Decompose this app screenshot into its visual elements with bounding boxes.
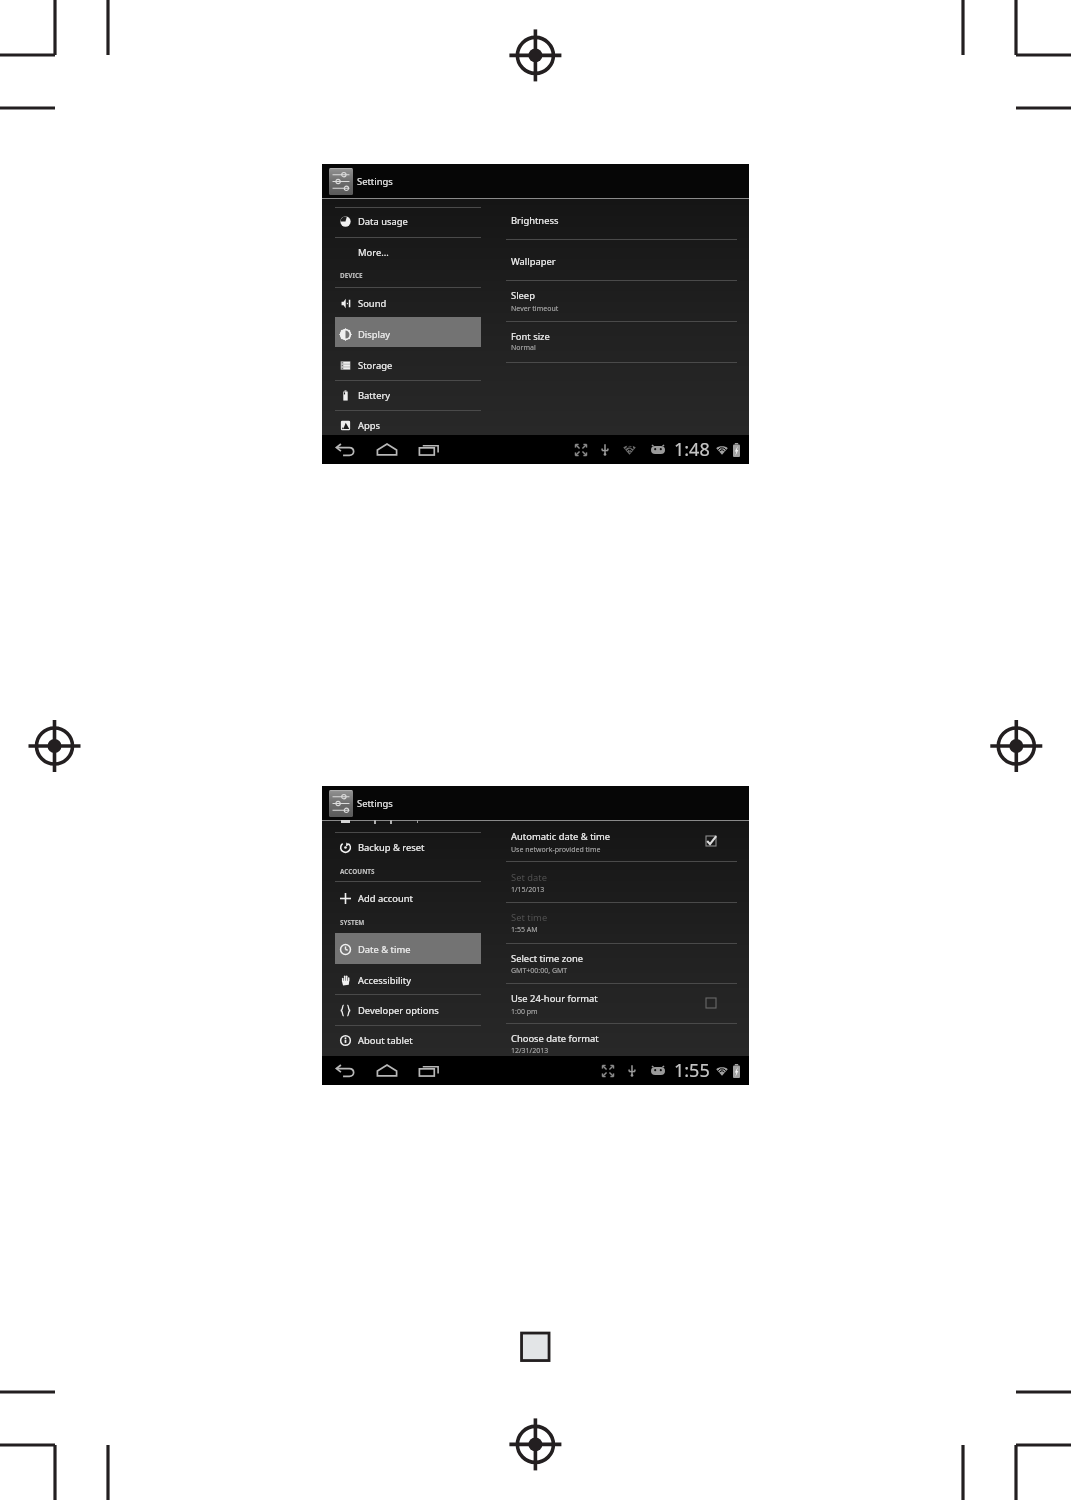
other: Wi-Fi signal <box>716 1066 728 1076</box>
button[interactable]: Set date <box>511 863 742 899</box>
staticText: Settings <box>357 797 393 810</box>
staticText: GMT+00:00, GMT <box>511 966 568 976</box>
button[interactable]: Font size <box>511 322 742 357</box>
button[interactable]: Brightness <box>511 206 742 234</box>
staticText: Automatic date & time <box>511 830 611 843</box>
other: System update <box>651 445 665 454</box>
staticText: ACCOUNTS <box>340 867 375 876</box>
staticText: Brightness <box>511 214 559 227</box>
staticText: SYSTEM <box>340 918 365 927</box>
other: Wi-Fi signal <box>716 445 728 455</box>
other: Full screen mode <box>602 1065 614 1077</box>
staticText: Wallpaper <box>511 255 556 268</box>
button[interactable]: Status bar, open quick settings <box>602 1058 740 1083</box>
other: Battery charging <box>733 443 740 457</box>
button[interactable]: More... <box>335 237 481 267</box>
button[interactable]: Accessibility <box>335 965 481 995</box>
staticText: Storage <box>358 359 393 372</box>
staticText: Display <box>358 328 391 341</box>
button[interactable]: Automatic date & time <box>511 822 742 859</box>
staticText: 1:55 AM <box>511 925 538 935</box>
staticText: Use network-provided time <box>511 845 601 855</box>
staticText: Add account <box>358 892 413 905</box>
other: Battery charging <box>733 1064 740 1078</box>
staticText: Sound <box>358 297 387 310</box>
staticText: Battery <box>358 389 391 402</box>
staticText: Data usage <box>358 215 408 228</box>
button[interactable]: Settings app icon <box>329 168 353 195</box>
staticText: 1:55 <box>674 1058 710 1083</box>
button[interactable]: Sleep <box>511 281 742 318</box>
other: USB connected <box>601 443 609 456</box>
button[interactable]: Apps <box>335 410 481 440</box>
button[interactable]: Recent apps <box>417 438 441 462</box>
staticText: DEVICE <box>340 271 363 280</box>
staticText: Use 24-hour format <box>511 992 598 1005</box>
button[interactable]: Wallpaper <box>511 247 742 275</box>
staticText: Set time <box>511 911 548 924</box>
button[interactable]: About tablet <box>335 1025 481 1055</box>
button[interactable]: Sound <box>335 288 481 318</box>
button[interactable]: Home <box>375 1059 399 1083</box>
staticText: Apps <box>358 419 381 432</box>
staticText: Never timeout <box>511 304 559 314</box>
staticText: Set date <box>511 871 548 884</box>
button[interactable]: Use 24-hour format <box>511 984 742 1021</box>
button[interactable]: Home <box>375 438 399 462</box>
button[interactable]: Data usage <box>335 206 481 236</box>
button[interactable]: Storage <box>335 350 481 380</box>
button[interactable]: Backup & reset <box>335 832 481 862</box>
staticText: 1:00 pm <box>511 1007 538 1017</box>
staticText: Select time zone <box>511 952 584 965</box>
staticText: Settings <box>357 175 393 188</box>
staticText: Backup & reset <box>358 841 425 854</box>
button[interactable]: Back <box>333 438 357 462</box>
staticText: 1/15/2013 <box>511 885 545 895</box>
button[interactable]: Back <box>333 1059 357 1083</box>
staticText: Date & time <box>358 943 411 956</box>
button[interactable]: Status bar, open quick settings <box>575 437 740 462</box>
button[interactable]: Select time zone <box>511 944 742 980</box>
other: System update <box>651 1066 665 1075</box>
staticText: 1:48 <box>674 437 710 462</box>
button[interactable]: Battery <box>335 380 481 410</box>
button[interactable]: Choose date format <box>511 1024 742 1060</box>
staticText: Sleep <box>511 289 535 302</box>
staticText: Choose date format <box>511 1032 599 1045</box>
button[interactable]: Recent apps <box>417 1059 441 1083</box>
button[interactable]: Display <box>335 319 481 349</box>
button[interactable]: Checked <box>706 836 716 846</box>
button[interactable]: Add account <box>335 883 481 913</box>
other: No internet <box>623 444 636 455</box>
staticText: Normal <box>511 343 536 353</box>
staticText: Accessibility <box>358 974 411 987</box>
button[interactable]: Developer options <box>335 995 481 1025</box>
staticText: 12/31/2013 <box>511 1046 549 1056</box>
staticText: Font size <box>511 330 550 343</box>
staticText: Developer options <box>358 1004 439 1017</box>
button[interactable]: Settings app icon <box>329 790 353 817</box>
staticText: More... <box>358 246 389 259</box>
button[interactable]: Unchecked <box>706 998 716 1008</box>
button[interactable]: Date & time <box>335 934 481 964</box>
other: Full screen mode <box>575 444 587 456</box>
other: USB connected <box>628 1064 636 1077</box>
staticText: About tablet <box>358 1034 413 1047</box>
button[interactable]: Set time <box>511 903 742 939</box>
